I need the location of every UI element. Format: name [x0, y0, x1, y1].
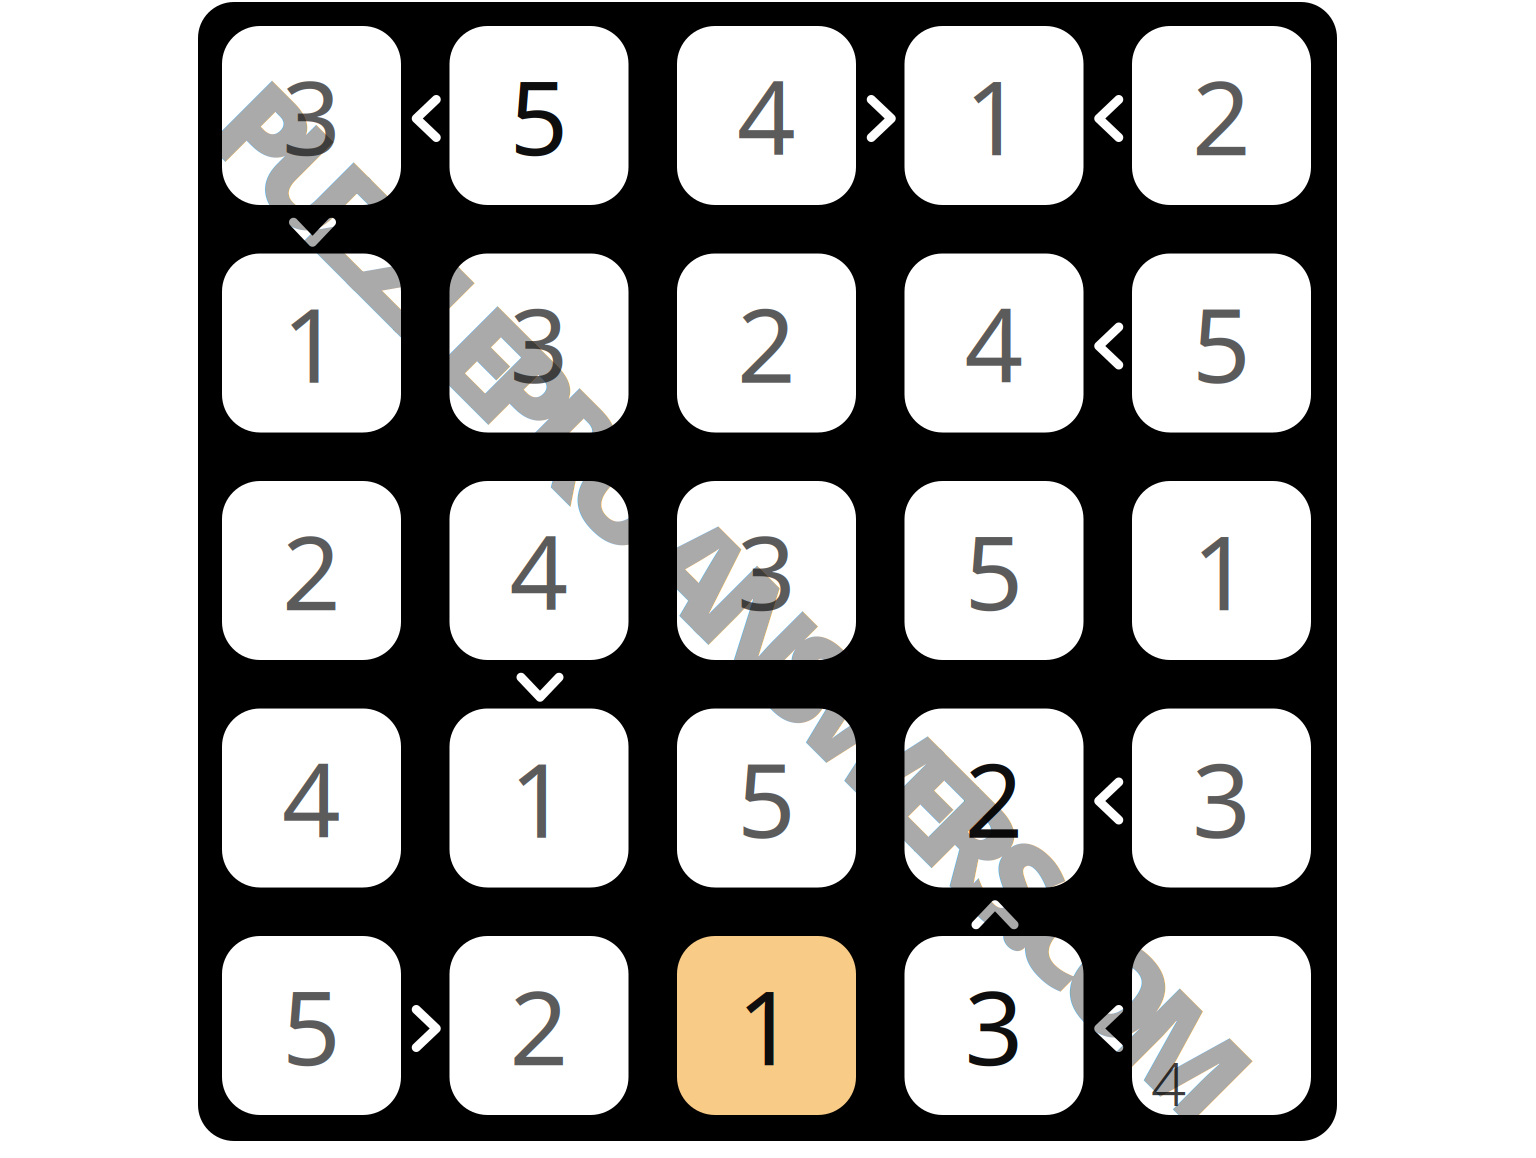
button[interactable]: 2: [677, 253, 856, 432]
staticText: 5: [282, 957, 341, 1094]
staticText: 2: [964, 730, 1023, 866]
button[interactable]: 4: [449, 481, 628, 660]
button[interactable]: 2: [449, 936, 628, 1115]
staticText: 3: [737, 502, 796, 639]
staticText: 3: [964, 957, 1023, 1094]
button[interactable]: 3: [904, 936, 1083, 1115]
button[interactable]: 5: [449, 26, 628, 205]
button[interactable]: 1: [904, 26, 1083, 205]
staticText: 4: [282, 730, 341, 866]
button[interactable]: 4: [222, 708, 401, 887]
button[interactable]: 3: [1132, 708, 1311, 887]
staticText: 1: [737, 957, 796, 1094]
staticText: 3: [509, 275, 568, 411]
staticText: 1: [1192, 502, 1251, 639]
button[interactable]: 5: [222, 936, 401, 1115]
button[interactable]: 5: [904, 481, 1083, 660]
staticText: 2: [1192, 47, 1251, 184]
staticText: 4: [509, 502, 568, 639]
staticText: 5: [509, 47, 568, 184]
staticText: 4: [1151, 1042, 1186, 1123]
button[interactable]: 5: [1132, 253, 1311, 432]
staticText: 4: [964, 275, 1023, 411]
button[interactable]: 4: [904, 253, 1083, 432]
button[interactable]: 2: [1132, 26, 1311, 205]
staticText: 4: [737, 47, 796, 184]
button[interactable]: 1: [1132, 481, 1311, 660]
button[interactable]: 5: [677, 708, 856, 887]
button[interactable]: 2: [904, 708, 1083, 887]
staticText: 1: [509, 730, 568, 866]
button[interactable]: 4: [677, 26, 856, 205]
staticText: 5: [1192, 275, 1251, 411]
staticText: 2: [509, 957, 568, 1094]
button[interactable]: 4: [1132, 936, 1311, 1115]
button[interactable]: 2: [222, 481, 401, 660]
staticText: 5: [737, 730, 796, 866]
staticText: 1: [282, 275, 341, 411]
button[interactable]: 3: [449, 253, 628, 432]
staticText: 3: [282, 47, 341, 184]
staticText: PUZZLEPRO-ANSWERS.COM: [30, 516, 1436, 684]
staticText: 5: [964, 502, 1023, 639]
staticText: 3: [1192, 730, 1251, 866]
button[interactable]: 3: [222, 26, 401, 205]
button[interactable]: 1: [449, 708, 628, 887]
button[interactable]: 3: [677, 481, 856, 660]
staticText: 1: [964, 47, 1023, 184]
button[interactable]: 1: [222, 253, 401, 432]
staticText: 2: [737, 275, 796, 411]
button[interactable]: 1: [677, 936, 856, 1115]
staticText: 2: [282, 502, 341, 639]
